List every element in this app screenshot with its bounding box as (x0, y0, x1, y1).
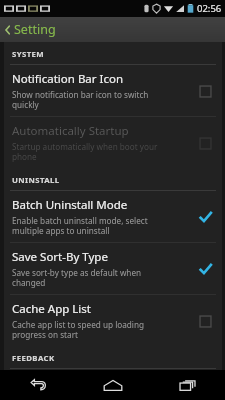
button[interactable]: Cache App List (4, 295, 222, 346)
staticText: Enable batch uninstall mode, select mult… (12, 215, 148, 236)
staticText: Save sort-by type as default when change… (12, 267, 142, 288)
staticText: UNINSTALL (12, 175, 60, 186)
staticText: Save Sort-By Type (12, 249, 108, 265)
staticText: Automatically Startup (12, 123, 129, 139)
button: Automatically Startup (4, 117, 222, 168)
button[interactable]: Toggle (196, 82, 214, 100)
button[interactable]: Batch Uninstall Mode (4, 191, 222, 242)
staticText: SYSTEM (12, 49, 45, 60)
button[interactable]: Back to Setting (0, 17, 225, 42)
staticText: Setting (14, 21, 56, 38)
staticText: FEEDBACK (12, 353, 55, 364)
staticText: Show notification bar icon to switch qui… (12, 89, 149, 110)
button[interactable]: Back (0, 370, 75, 400)
button[interactable]: Toggle (196, 312, 214, 330)
button[interactable]: Save Sort-By Type (4, 243, 222, 294)
button[interactable]: Toggle (196, 260, 214, 278)
button: Toggle (196, 134, 214, 152)
staticText: Batch Uninstall Mode (12, 197, 128, 213)
staticText: Cache app list to speed up loading progr… (12, 319, 145, 340)
staticText: Startup automatically when boot your pho… (12, 141, 158, 162)
staticText: Cache App List (12, 301, 91, 317)
button[interactable]: Recent apps (150, 370, 225, 400)
staticText: 02:56 (197, 2, 222, 15)
button[interactable]: Toggle (196, 208, 214, 226)
button[interactable]: Home (75, 370, 150, 400)
staticText: Notification Bar Icon (12, 71, 124, 87)
button[interactable]: Notification Bar Icon (4, 65, 222, 116)
